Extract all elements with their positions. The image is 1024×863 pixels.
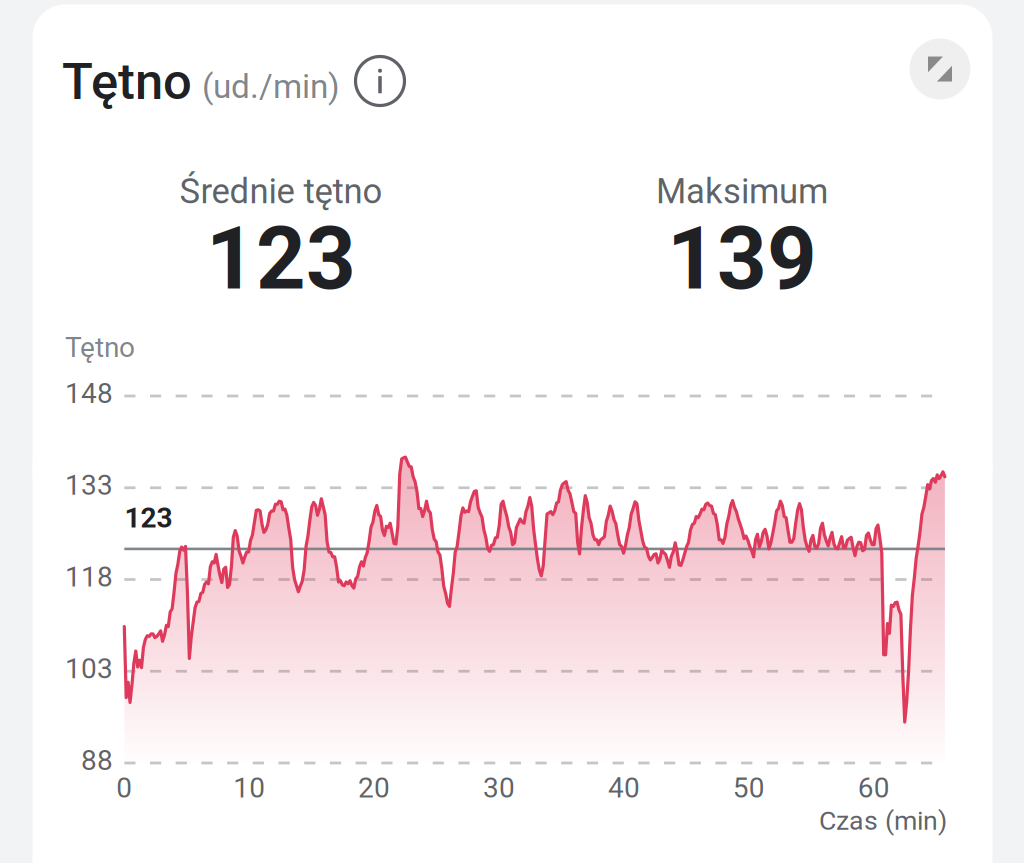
staticText: 60 (858, 771, 890, 804)
staticText: Tętno (62, 52, 192, 111)
button[interactable]: Rozwiń wykres (909, 38, 970, 99)
staticText: Średnie tętno (179, 171, 382, 212)
staticText: 88 (81, 744, 113, 777)
staticText: 148 (65, 377, 113, 410)
staticText: 40 (608, 771, 640, 804)
staticText: 10 (233, 771, 265, 804)
staticText: 133 (65, 469, 113, 502)
staticText: Tętno (65, 331, 135, 364)
staticText: 30 (483, 771, 515, 804)
staticText: (ud./min) (202, 67, 340, 106)
button[interactable]: Informacje (348, 49, 412, 113)
staticText: 123 (206, 208, 356, 310)
staticText: 50 (733, 771, 765, 804)
staticText: 118 (65, 560, 113, 593)
staticText: Czas (min) (819, 805, 947, 836)
staticText: 123 (124, 501, 172, 534)
staticText: 103 (65, 652, 113, 685)
staticText: 139 (667, 208, 817, 310)
staticText: Maksimum (656, 171, 828, 212)
staticText: 20 (358, 771, 390, 804)
staticText: 0 (116, 771, 132, 804)
